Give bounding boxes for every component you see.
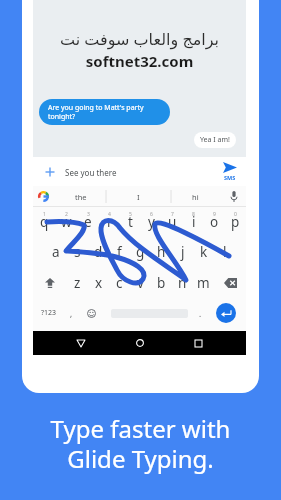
button[interactable]: g bbox=[130, 240, 151, 264]
staticText: n bbox=[178, 274, 187, 292]
staticText: Are you going to Matt's party tonight? bbox=[48, 103, 144, 121]
staticText: . bbox=[199, 308, 202, 319]
button[interactable]: n bbox=[172, 271, 193, 295]
button[interactable]: z bbox=[66, 271, 88, 295]
button[interactable]: Backspace bbox=[214, 271, 246, 295]
button[interactable]: 1 bbox=[33, 211, 55, 235]
staticText: h bbox=[157, 243, 166, 261]
staticText: ?123 bbox=[41, 308, 57, 318]
staticText: 5 bbox=[129, 211, 132, 218]
button[interactable]: k bbox=[193, 240, 214, 264]
button[interactable]: c bbox=[109, 271, 130, 295]
button[interactable]: Send SMS bbox=[213, 157, 246, 186]
button[interactable]: 6 bbox=[141, 211, 162, 235]
button[interactable]: Google bbox=[33, 186, 54, 207]
button[interactable]: 0 bbox=[225, 211, 246, 235]
button[interactable]: d bbox=[88, 240, 109, 264]
button[interactable]: Are you going to Matt's party tonight? bbox=[39, 99, 170, 125]
button[interactable]: Yea I am! bbox=[194, 132, 236, 148]
staticText: 1 bbox=[43, 211, 46, 218]
staticText: hi bbox=[192, 192, 199, 202]
button[interactable]: the bbox=[55, 186, 106, 207]
staticText: 0 bbox=[234, 211, 237, 218]
button[interactable]: 3 bbox=[77, 211, 99, 235]
staticText: softnet32.com bbox=[33, 51, 246, 71]
staticText: o bbox=[210, 213, 219, 231]
button[interactable]: Add attachment bbox=[37, 157, 63, 186]
staticText: a bbox=[52, 243, 60, 261]
button[interactable]: Shift bbox=[33, 271, 66, 295]
staticText: See you there bbox=[65, 167, 117, 178]
button[interactable]: v bbox=[130, 271, 151, 295]
button[interactable]: 7 bbox=[162, 211, 183, 235]
button[interactable]: I bbox=[106, 186, 171, 207]
staticText: j bbox=[181, 243, 185, 261]
button[interactable]: . bbox=[192, 301, 209, 325]
staticText: k bbox=[200, 243, 208, 261]
staticText: y bbox=[148, 213, 155, 231]
button[interactable]: 4 bbox=[99, 211, 120, 235]
staticText: t bbox=[128, 213, 133, 231]
button[interactable]: hi bbox=[171, 186, 220, 207]
button[interactable]: 2 bbox=[55, 211, 77, 235]
staticText: l bbox=[223, 243, 227, 261]
staticText: w bbox=[61, 213, 72, 231]
staticText: u bbox=[168, 213, 177, 231]
button[interactable]: s bbox=[67, 240, 88, 264]
button[interactable]: Enter bbox=[209, 301, 243, 325]
staticText: , bbox=[70, 308, 73, 319]
button[interactable]: Back bbox=[70, 332, 92, 354]
staticText: SMS bbox=[224, 174, 236, 181]
staticText: 6 bbox=[150, 211, 153, 218]
staticText: 3 bbox=[87, 211, 90, 218]
staticText: z bbox=[74, 274, 81, 292]
button[interactable]: 5 bbox=[120, 211, 141, 235]
staticText: r bbox=[107, 213, 113, 231]
staticText: 7 bbox=[171, 211, 174, 218]
button[interactable]: x bbox=[88, 271, 109, 295]
staticText: 9 bbox=[213, 211, 216, 218]
staticText: m bbox=[197, 274, 210, 292]
staticText: e bbox=[84, 213, 92, 231]
button[interactable]: Recent apps bbox=[187, 332, 209, 354]
button[interactable]: Home bbox=[129, 332, 151, 354]
button[interactable]: 9 bbox=[204, 211, 225, 235]
staticText: برامج والعاب سوفت نت bbox=[33, 28, 246, 50]
button[interactable]: Voice input bbox=[221, 186, 246, 207]
staticText: c bbox=[116, 274, 123, 292]
button[interactable]: 8 bbox=[183, 211, 204, 235]
button[interactable]: j bbox=[172, 240, 193, 264]
staticText: p bbox=[231, 213, 240, 231]
button[interactable]: b bbox=[151, 271, 172, 295]
staticText: Type faster with Glide Typing. bbox=[0, 412, 281, 475]
button[interactable]: h bbox=[151, 240, 172, 264]
staticText: 8 bbox=[192, 211, 195, 218]
staticText: I bbox=[137, 192, 140, 202]
staticText: d bbox=[94, 243, 103, 261]
button[interactable]: ?123 bbox=[35, 301, 63, 325]
button[interactable]: a bbox=[45, 240, 67, 264]
staticText: s bbox=[74, 243, 81, 261]
staticText: f bbox=[117, 243, 122, 261]
button[interactable]: , bbox=[63, 301, 80, 325]
staticText: g bbox=[136, 243, 145, 261]
staticText: i bbox=[192, 213, 196, 231]
button[interactable]: l bbox=[214, 240, 235, 264]
staticText: 4 bbox=[108, 211, 111, 218]
staticText: the bbox=[75, 192, 87, 202]
staticText: Yea I am! bbox=[200, 135, 230, 145]
staticText: 2 bbox=[65, 211, 68, 218]
staticText: q bbox=[40, 213, 49, 231]
staticText: v bbox=[137, 274, 144, 292]
button[interactable]: Emoji bbox=[80, 301, 102, 325]
button[interactable]: f bbox=[109, 240, 130, 264]
button[interactable]: m bbox=[193, 271, 214, 295]
staticText: b bbox=[157, 274, 166, 292]
staticText: x bbox=[95, 274, 103, 292]
